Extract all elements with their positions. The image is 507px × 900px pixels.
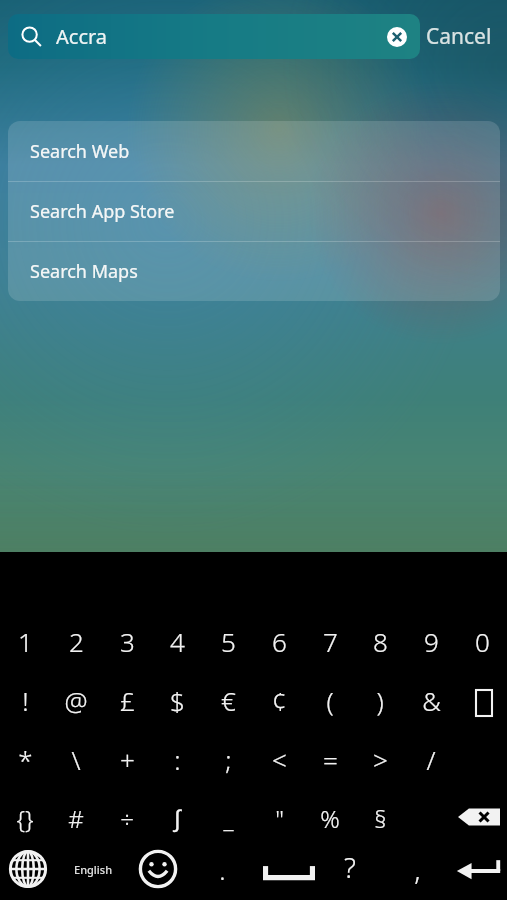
staticText: 5 [221,624,236,659]
button[interactable]: 8 [354,615,406,667]
button[interactable]: , [391,843,443,895]
button[interactable]: Emoji [138,849,178,889]
button[interactable]: $ [151,674,203,726]
button[interactable]: " [253,792,305,844]
button[interactable]: Change language [8,849,48,889]
staticText: English [74,862,113,877]
staticText: 2 [69,624,84,659]
button[interactable]: % [304,792,356,844]
button[interactable]: ÷ [101,792,153,844]
button[interactable]: Space [263,852,315,884]
staticText: ¢ [272,683,287,718]
button[interactable]: \ [50,733,102,785]
staticText: 1 [18,624,33,659]
button[interactable]: / [405,733,457,785]
button[interactable]: # [50,792,102,844]
staticText: Cancel [426,22,492,51]
button[interactable]: > [354,733,406,785]
button[interactable]: 1 [0,615,51,667]
button[interactable]: @ [50,674,102,726]
button[interactable]: 9 [405,615,457,667]
button[interactable]: ¢ [253,674,305,726]
staticText: 3 [120,624,135,659]
button[interactable]: ? [324,841,376,893]
staticText: \ [71,742,81,777]
button[interactable]: Symbol [476,690,492,716]
button[interactable]: Search Maps [8,241,500,301]
button[interactable]: & [405,674,457,726]
staticText: £ [120,683,135,718]
button[interactable]: Clear text [387,27,407,47]
staticText: % [320,802,340,835]
button[interactable]: £ [101,674,153,726]
staticText: > [373,742,388,777]
staticText: Accra [56,23,387,50]
staticText: + [120,742,135,777]
staticText: Search App Store [30,199,175,224]
button[interactable]: = [304,733,356,785]
button[interactable]: English [64,849,122,889]
button[interactable]: ) [354,674,406,726]
button[interactable]: ∫ [151,792,203,844]
button[interactable]: 7 [304,615,356,667]
staticText: < [272,742,287,777]
staticText: ÷ [120,802,134,835]
button[interactable]: ( [304,674,356,726]
button[interactable]: 2 [50,615,102,667]
button[interactable]: 4 [151,615,203,667]
button[interactable]: : [151,733,203,785]
staticText: § [374,802,387,835]
staticText: 6 [272,624,287,659]
staticText: / [426,742,436,777]
staticText: € [221,683,236,718]
staticText: " [275,802,284,835]
staticText: , [414,850,421,888]
staticText: # [68,802,84,835]
staticText: $ [170,683,185,718]
staticText: 0 [475,624,490,659]
staticText: Search Maps [30,259,138,284]
button[interactable]: {} [0,792,51,844]
staticText: 8 [373,624,388,659]
button[interactable]: Search Web [8,121,500,181]
staticText: = [323,742,338,777]
staticText: : [174,742,181,777]
button[interactable]: * [0,733,51,785]
button[interactable]: _ [202,792,254,844]
button[interactable]: 5 [202,615,254,667]
button[interactable]: . [196,843,248,895]
button[interactable]: 3 [101,615,153,667]
staticText: _ [223,802,234,835]
staticText: ; [225,742,232,777]
button[interactable]: Search App Store [8,181,500,241]
button[interactable]: ! [0,674,51,726]
button[interactable]: + [101,733,153,785]
staticText: ( [326,683,334,718]
staticText: Search Web [30,139,130,164]
button[interactable]: < [253,733,305,785]
staticText: ) [376,683,384,718]
staticText: ? [344,848,356,886]
button[interactable]: 0 [456,615,507,667]
staticText: & [422,683,441,718]
button[interactable]: § [354,792,406,844]
staticText: ∫ [174,805,181,832]
button[interactable]: Accra [8,14,420,59]
staticText: @ [64,683,88,718]
staticText: {} [16,802,34,835]
button[interactable]: Backspace [458,802,500,832]
button[interactable]: ; [202,733,254,785]
staticText: 9 [424,624,439,659]
button[interactable]: € [202,674,254,726]
button[interactable]: Enter [455,852,501,886]
staticText: 4 [170,624,185,659]
staticText: . [219,852,226,887]
staticText: ! [22,683,29,718]
button[interactable]: Cancel [426,14,507,59]
button[interactable]: 6 [253,615,305,667]
staticText: * [18,742,33,777]
staticText: 7 [323,624,338,659]
